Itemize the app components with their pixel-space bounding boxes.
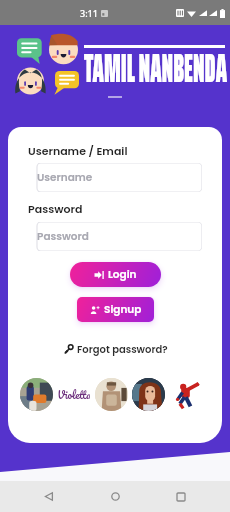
staticText: Password (28, 201, 83, 216)
button[interactable]: Story 4 (132, 378, 165, 411)
button[interactable]: Home (100, 481, 131, 512)
button[interactable]: Forgot password? (61, 340, 170, 358)
button[interactable]: Recents (165, 481, 196, 512)
staticText: Login (108, 267, 137, 282)
staticText: TAMIL NANBENDA (84, 35, 227, 100)
staticText: Username / Email (28, 143, 128, 158)
button[interactable]: Password (28, 222, 202, 251)
staticText: Forgot password? (77, 342, 168, 356)
button[interactable]: Back (34, 481, 65, 512)
button[interactable]: Story 3 (95, 378, 128, 411)
staticText: Violetta (57, 386, 90, 404)
staticText: Signup (104, 302, 142, 317)
button[interactable]: Violetta (57, 378, 90, 411)
button[interactable]: Spiderman (170, 378, 203, 411)
staticText: Password (37, 229, 89, 244)
staticText: 3:11 (80, 7, 98, 19)
button[interactable]: Story 1 (20, 378, 53, 411)
button[interactable]: Signup (77, 297, 154, 322)
button[interactable]: Username (28, 163, 202, 192)
staticText: Username (37, 170, 93, 185)
button[interactable]: Login (70, 262, 161, 287)
